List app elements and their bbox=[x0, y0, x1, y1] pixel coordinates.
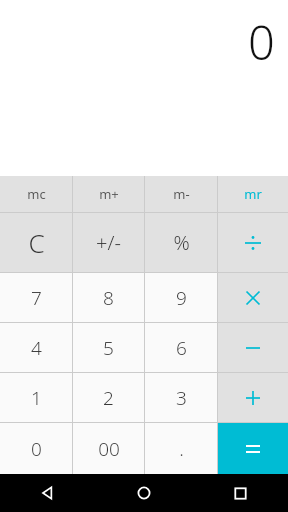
staticText: 4 bbox=[31, 335, 42, 361]
button[interactable]: 7 bbox=[0, 273, 72, 322]
staticText: 9 bbox=[176, 285, 187, 311]
button[interactable]: 6 bbox=[145, 323, 217, 372]
button[interactable]: mc bbox=[0, 176, 72, 212]
button[interactable]: Back bbox=[0, 474, 96, 512]
staticText: 7 bbox=[31, 285, 42, 311]
button[interactable]: % bbox=[145, 213, 217, 272]
staticText: . bbox=[179, 436, 184, 462]
button[interactable]: m- bbox=[145, 176, 217, 212]
staticText: 6 bbox=[176, 335, 187, 361]
button[interactable]: +/- bbox=[73, 213, 144, 272]
button[interactable]: Equals bbox=[218, 423, 288, 474]
button[interactable]: 2 bbox=[73, 373, 144, 422]
button[interactable]: 9 bbox=[145, 273, 217, 322]
staticText: % bbox=[173, 229, 190, 256]
button[interactable]: Minus bbox=[218, 323, 288, 372]
button[interactable]: Recents bbox=[192, 474, 288, 512]
staticText: C bbox=[28, 225, 45, 260]
staticText: m- bbox=[173, 185, 190, 203]
staticText: 3 bbox=[176, 385, 187, 411]
staticText: 8 bbox=[103, 285, 114, 311]
button[interactable]: Divide bbox=[218, 213, 288, 272]
button[interactable]: Multiply bbox=[218, 273, 288, 322]
button[interactable]: mr bbox=[218, 176, 288, 212]
staticText: 0 bbox=[248, 10, 275, 74]
staticText: 0 bbox=[31, 436, 42, 462]
button[interactable]: 4 bbox=[0, 323, 72, 372]
button[interactable]: 5 bbox=[73, 323, 144, 372]
staticText: m+ bbox=[99, 185, 119, 203]
button[interactable]: 1 bbox=[0, 373, 72, 422]
button[interactable]: Plus bbox=[218, 373, 288, 422]
button[interactable]: 00 bbox=[73, 423, 144, 474]
staticText: mc bbox=[27, 185, 46, 203]
staticText: mr bbox=[244, 185, 262, 203]
staticText: 5 bbox=[103, 335, 114, 361]
button[interactable]: C bbox=[0, 213, 72, 272]
staticText: +/- bbox=[96, 229, 121, 256]
staticText: 1 bbox=[31, 385, 42, 411]
staticText: 2 bbox=[103, 385, 114, 411]
staticText: 00 bbox=[98, 436, 120, 462]
button[interactable]: 8 bbox=[73, 273, 144, 322]
button[interactable]: . bbox=[145, 423, 217, 474]
button[interactable]: 0 bbox=[0, 423, 72, 474]
button[interactable]: 3 bbox=[145, 373, 217, 422]
button[interactable]: Home bbox=[96, 474, 192, 512]
button[interactable]: m+ bbox=[73, 176, 144, 212]
